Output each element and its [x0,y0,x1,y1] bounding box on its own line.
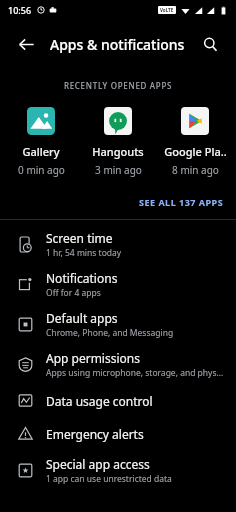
staticText: Screen time [46,230,113,246]
staticText: 1 app can use unrestricted data [46,473,172,485]
staticText: Chrome, Phone, and Messaging [46,327,174,339]
button[interactable]: Google Pla.. [159,105,231,179]
staticText: Data usage control [46,393,153,409]
staticText: 10:56 [8,4,32,16]
button[interactable]: Screen time [0,224,236,264]
button[interactable]: Special app access [0,450,236,490]
button[interactable]: App permissions [0,344,236,384]
button[interactable]: Gallery [5,105,77,179]
staticText: Hangouts [92,144,144,159]
staticText: Off for 4 apps [46,287,101,299]
button[interactable]: Notifications [0,264,236,304]
button[interactable]: Hangouts [82,105,154,179]
button[interactable]: Emergency alerts [0,417,236,450]
staticText: Apps & notifications [50,35,185,54]
staticText: Special app access [46,456,150,472]
staticText: VoLTE [160,7,174,13]
staticText: App permissions [46,350,140,366]
staticText: Notifications [46,270,118,286]
button[interactable]: Back [10,28,42,60]
staticText: Emergency alerts [46,426,144,442]
staticText: 3 min ago [95,163,142,177]
staticText: 8 min ago [172,163,219,177]
staticText: Apps using microphone, storage, and phys… [46,367,224,379]
staticText: Gallery [22,144,60,159]
staticText: 1 hr, 54 mins today [46,247,122,259]
button[interactable]: Default apps [0,304,236,344]
staticText: SEE ALL 137 APPS [139,196,224,208]
staticText: Google Pla.. [164,144,227,159]
staticText: 0 min ago [18,163,65,177]
button[interactable]: Search [194,28,226,60]
staticText: Default apps [46,310,118,326]
button[interactable]: Data usage control [0,384,236,417]
button[interactable]: SEE ALL 137 APPS [0,189,236,215]
staticText: RECENTLY OPENED APPS [0,80,236,91]
